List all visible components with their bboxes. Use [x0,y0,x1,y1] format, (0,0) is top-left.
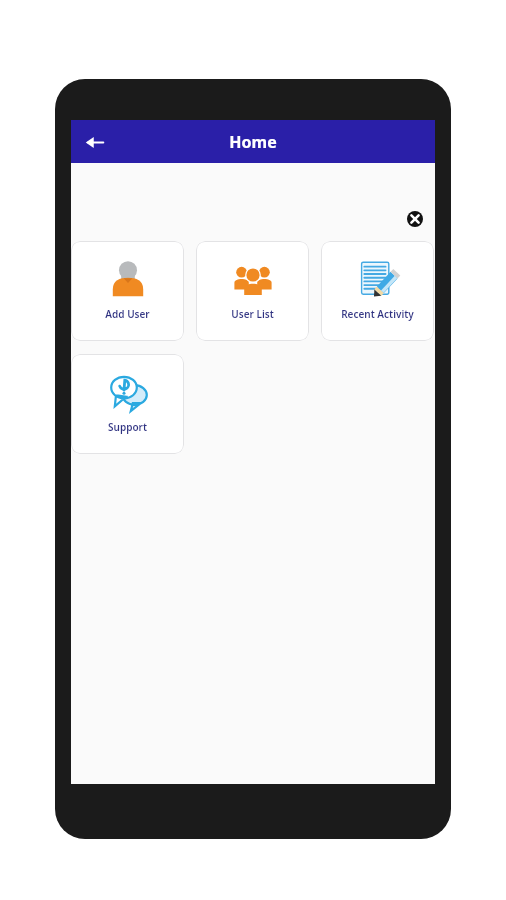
button[interactable]: Add User [71,241,184,341]
button[interactable]: Support [71,354,184,454]
button[interactable]: Back [76,124,112,160]
staticText: Recent Activity [341,307,414,321]
staticText: User List [231,307,274,321]
button[interactable]: Recent Activity [321,241,434,341]
button[interactable]: User List [196,241,309,341]
staticText: Add User [105,307,150,321]
staticText: Home [229,131,277,153]
staticText: Support [108,420,147,434]
button[interactable]: Close [403,207,427,231]
